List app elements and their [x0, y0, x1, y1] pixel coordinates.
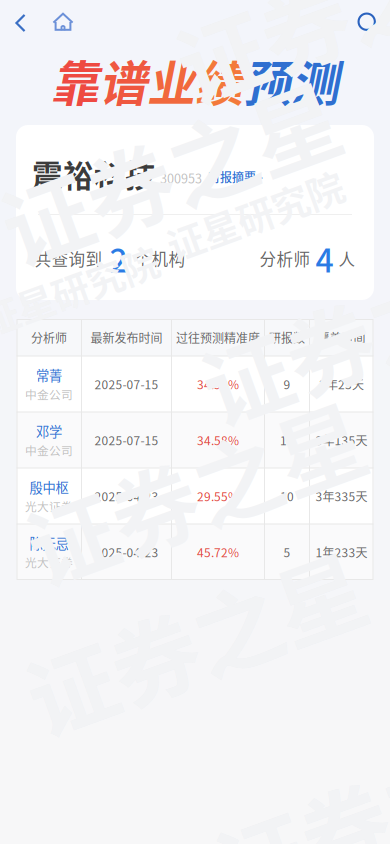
staticText: 证星研究院: [162, 188, 347, 242]
staticText: 5: [283, 543, 290, 561]
staticText: 证券之星: [19, 426, 371, 554]
staticText: 9: [283, 375, 290, 393]
staticText: 3年335天: [315, 487, 367, 505]
staticText: 29.55%: [197, 487, 239, 505]
staticText: 绩: [195, 45, 243, 115]
button[interactable]: 殷中枢: [16, 468, 373, 524]
staticText: 分析师: [259, 246, 310, 270]
staticText: 光大证券: [25, 554, 73, 571]
staticText: 证星研究院: [0, 263, 162, 317]
staticText: 3年135天: [315, 431, 367, 449]
staticText: 光大证券: [25, 498, 73, 515]
staticText: 3年23天: [319, 375, 364, 393]
button[interactable]: Home: [41, 0, 85, 46]
staticText: 证券之星: [169, 0, 390, 72]
staticText: 财报摘要>: [208, 168, 263, 186]
staticText: 证券之星: [0, 106, 346, 234]
staticText: 2025-07-15: [94, 375, 158, 393]
staticText: 共查询到: [34, 246, 102, 270]
staticText: 常菁: [36, 365, 62, 385]
staticText: 证星研究院: [162, 188, 347, 242]
staticText: 震裕科技: [32, 152, 156, 196]
staticText: 34.58%: [197, 431, 239, 449]
button[interactable]: 邓学: [16, 412, 373, 468]
staticText: 10: [280, 487, 294, 505]
staticText: 业: [147, 45, 195, 115]
staticText: 300953: [160, 169, 202, 187]
staticText: 殷中枢: [29, 477, 68, 497]
staticText: 分析师: [31, 329, 67, 346]
staticText: 2025-04-23: [94, 543, 158, 561]
staticText: 过往预测精准度: [176, 329, 260, 346]
staticText: 证券之星: [169, 0, 390, 72]
staticText: 预测: [243, 45, 339, 115]
staticText: 陈无忌: [29, 533, 68, 553]
staticText: 1年233天: [315, 543, 367, 561]
button[interactable]: Back: [0, 0, 41, 46]
staticText: 研报数: [269, 329, 305, 346]
staticText: 证券之星: [0, 106, 346, 234]
staticText: 4: [315, 235, 333, 282]
button[interactable]: 陈无忌: [16, 524, 373, 580]
staticText: 个机构: [134, 246, 185, 270]
staticText: 最新发布时间: [90, 329, 162, 346]
staticText: 2: [109, 235, 127, 282]
staticText: 13: [280, 431, 294, 449]
button[interactable]: Search: [346, 0, 390, 46]
staticText: 覆盖时间: [317, 329, 365, 346]
staticText: 证券之星: [194, 266, 390, 394]
button[interactable]: 财报摘要>: [208, 165, 263, 183]
staticText: 证券之星: [194, 266, 390, 394]
staticText: 2025-04-23: [94, 487, 158, 505]
staticText: 中金公司: [25, 386, 73, 403]
staticText: 中金公司: [25, 442, 73, 459]
staticText: 45.72%: [197, 543, 239, 561]
staticText: 人: [338, 246, 355, 270]
button[interactable]: 常菁: [16, 356, 373, 412]
staticText: 靠: [51, 45, 99, 115]
staticText: 34.58%: [197, 375, 239, 393]
staticText: 谱: [99, 45, 147, 115]
staticText: 证券之星: [19, 426, 371, 554]
staticText: 证星研究院: [0, 263, 162, 317]
staticText: 邓学: [36, 421, 62, 441]
staticText: 2025-07-15: [94, 431, 158, 449]
